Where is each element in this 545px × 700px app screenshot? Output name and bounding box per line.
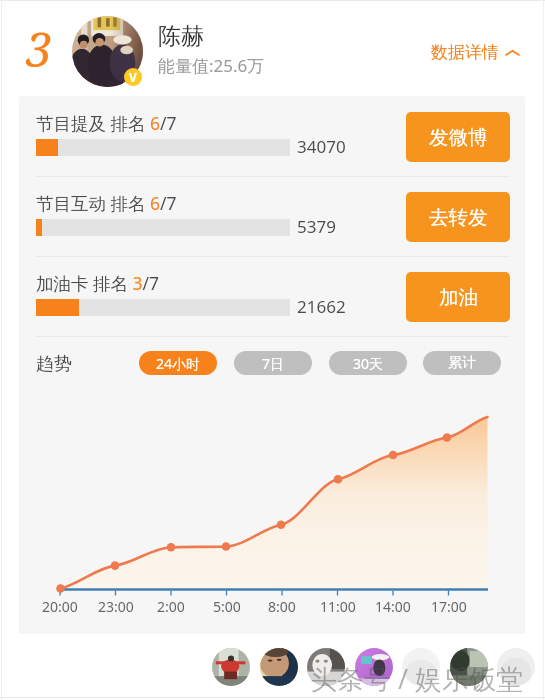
button[interactable]: 陈赫 bbox=[158, 22, 338, 77]
staticText: 累计 bbox=[448, 354, 476, 372]
staticText: 5379 bbox=[297, 215, 336, 238]
button[interactable] bbox=[19, 97, 525, 176]
button[interactable] bbox=[19, 177, 525, 256]
button[interactable]: 陈赫 profile photo bbox=[72, 16, 143, 87]
button[interactable]: Fan avatar bbox=[355, 648, 393, 686]
button[interactable]: 去转发 bbox=[406, 192, 510, 242]
button[interactable]: 数据详情 bbox=[431, 42, 520, 63]
staticText: 5:00 bbox=[213, 597, 241, 616]
staticText: 能量值:25.6万 bbox=[158, 54, 265, 77]
button[interactable]: Fan avatar bbox=[307, 648, 345, 686]
staticText: 8:00 bbox=[268, 597, 296, 616]
staticText: 去转发 bbox=[429, 205, 488, 230]
button[interactable]: 发微博 bbox=[406, 112, 510, 162]
button[interactable]: 7日 bbox=[234, 351, 312, 375]
staticText: 加油 bbox=[439, 285, 478, 310]
staticText: 23:00 bbox=[98, 597, 134, 616]
staticText: 17:00 bbox=[431, 597, 467, 616]
staticText: 头条号 / 娱乐饭堂 bbox=[310, 660, 524, 697]
staticText: 30天 bbox=[353, 354, 384, 373]
button[interactable]: Fan avatar bbox=[212, 648, 250, 686]
staticText: 21662 bbox=[297, 295, 346, 318]
staticText: 24小时 bbox=[156, 354, 201, 373]
staticText: 节目互动 排名 6/7 bbox=[36, 191, 177, 215]
button[interactable]: Fan avatar bbox=[260, 648, 298, 686]
staticText: 数据详情 bbox=[431, 42, 499, 63]
staticText: 7日 bbox=[262, 354, 285, 373]
button[interactable]: 30天 bbox=[329, 351, 407, 375]
staticText: V bbox=[129, 69, 137, 85]
staticText: 加油卡 排名 3/7 bbox=[36, 271, 160, 295]
staticText: 14:00 bbox=[375, 597, 411, 616]
button[interactable]: 累计 bbox=[423, 351, 501, 375]
staticText: 2:00 bbox=[157, 597, 185, 616]
button[interactable]: 24小时 bbox=[139, 351, 217, 375]
button[interactable]: Fan avatar bbox=[497, 648, 535, 686]
staticText: 陈赫 bbox=[158, 22, 204, 51]
button[interactable]: Fan avatar bbox=[450, 648, 488, 686]
button[interactable] bbox=[19, 257, 525, 336]
button[interactable]: Fan avatar bbox=[402, 648, 440, 686]
staticText: 节目提及 排名 6/7 bbox=[36, 111, 177, 135]
staticText: 11:00 bbox=[320, 597, 356, 616]
staticText: 发微博 bbox=[429, 125, 488, 150]
staticText: 3 bbox=[26, 17, 53, 81]
staticText: 20:00 bbox=[42, 597, 78, 616]
button[interactable]: 加油 bbox=[406, 272, 510, 322]
staticText: 趋势 bbox=[36, 353, 72, 376]
staticText: 34070 bbox=[297, 135, 346, 158]
